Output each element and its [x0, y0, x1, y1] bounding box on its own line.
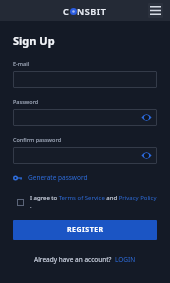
staticText: Sign Up	[13, 33, 55, 48]
staticText: LOGIN	[115, 255, 136, 264]
staticText: I agree to Terms of Service and Privacy …	[30, 194, 157, 210]
staticText: Generate password	[28, 173, 88, 182]
button[interactable]: Show confirm password	[141, 150, 152, 161]
button[interactable]: Show confirm password	[13, 147, 157, 164]
staticText: REGISTER	[67, 225, 104, 235]
button[interactable]: Menu	[148, 3, 163, 18]
staticText: E-mail	[13, 60, 30, 67]
button[interactable]: REGISTER	[13, 220, 157, 240]
button[interactable]: Generate password	[13, 173, 88, 182]
staticText: Already have an account?	[34, 255, 112, 264]
staticText: Confirm password	[13, 136, 62, 143]
staticText: NSBIT	[77, 5, 107, 17]
button[interactable]: I agree to Terms of Service and Privacy …	[13, 194, 157, 210]
button[interactable]: C	[63, 5, 107, 17]
button[interactable]: Show password	[141, 112, 152, 123]
staticText: Password	[13, 98, 39, 105]
staticText: C	[63, 5, 70, 17]
button[interactable]: LOGIN	[115, 255, 136, 264]
button[interactable]	[13, 71, 157, 88]
button[interactable]: Show password	[13, 109, 157, 126]
